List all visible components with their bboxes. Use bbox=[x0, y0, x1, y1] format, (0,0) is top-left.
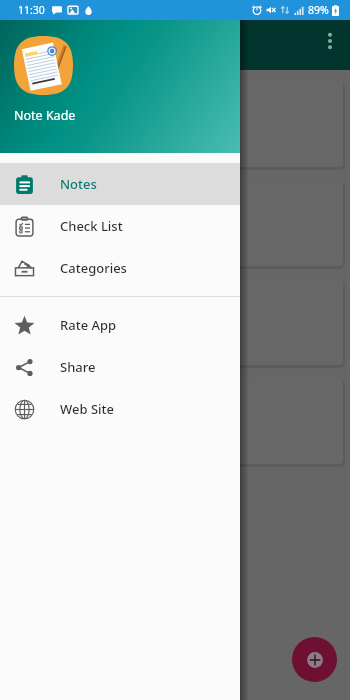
staticText: Web Site bbox=[60, 400, 114, 418]
staticText: Rate App bbox=[60, 316, 117, 334]
button[interactable]: Share bbox=[0, 346, 240, 388]
staticText: Share bbox=[60, 358, 96, 376]
button[interactable]: Web Site bbox=[0, 388, 240, 430]
button[interactable] bbox=[7, 179, 343, 266]
button[interactable] bbox=[7, 377, 343, 464]
button[interactable]: Add note bbox=[292, 637, 337, 682]
staticText: Notes bbox=[60, 175, 97, 193]
staticText: Check List bbox=[60, 217, 123, 235]
button[interactable]: Rate App bbox=[0, 304, 240, 346]
staticText: 11:30 bbox=[18, 3, 45, 17]
button[interactable]: Notes bbox=[0, 163, 240, 205]
staticText: 89% bbox=[308, 3, 329, 17]
staticText: Note Kade bbox=[14, 107, 76, 124]
button[interactable] bbox=[7, 278, 343, 365]
staticText: Categories bbox=[60, 259, 127, 277]
button[interactable]: Categories bbox=[0, 247, 240, 289]
button[interactable] bbox=[7, 80, 343, 167]
button[interactable]: Check List bbox=[0, 205, 240, 247]
button[interactable]: More options bbox=[312, 23, 348, 59]
